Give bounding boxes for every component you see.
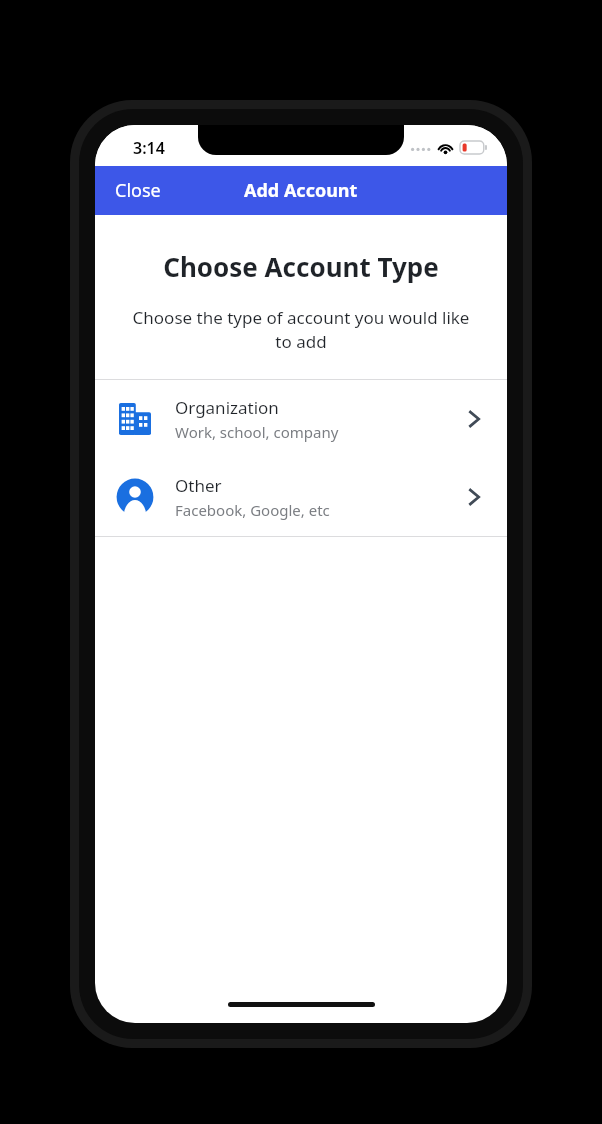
staticText: 3:14 — [133, 137, 165, 159]
button[interactable]: Organization — [95, 380, 507, 458]
staticText: Organization — [175, 396, 279, 419]
staticText: Close — [115, 178, 161, 203]
other: Open Other — [461, 484, 487, 510]
staticText: Work, school, company — [175, 422, 339, 442]
other: Other account — [115, 477, 155, 517]
button[interactable]: Other account — [95, 458, 507, 536]
staticText: Choose Account Type — [95, 249, 507, 284]
other: Open Organization — [461, 406, 487, 432]
staticText: Other — [175, 474, 222, 497]
other: Organization — [115, 399, 155, 439]
staticText: Facebook, Google, etc — [175, 500, 330, 520]
button[interactable]: Close — [95, 168, 181, 213]
staticText: Choose the type of account you would lik… — [115, 306, 487, 353]
staticText: Add Account — [244, 178, 358, 203]
